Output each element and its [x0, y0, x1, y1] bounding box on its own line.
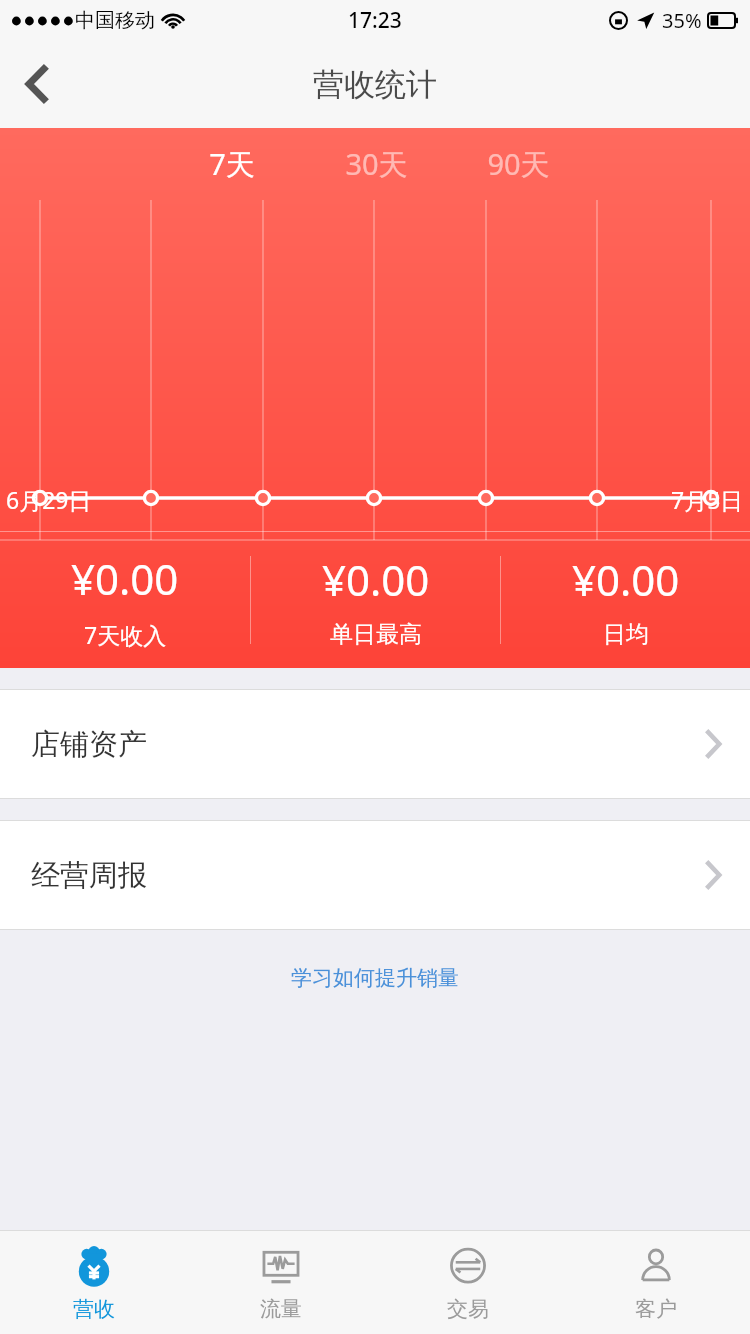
- button[interactable]: 店铺资产: [0, 689, 750, 799]
- staticText: 30天: [345, 144, 408, 184]
- staticText: 中国移动: [75, 8, 155, 33]
- staticText: 营收统计: [313, 65, 437, 104]
- staticText: ¥0.00: [572, 551, 680, 608]
- button[interactable]: ¥0.00: [251, 532, 500, 668]
- staticText: 店铺资产: [31, 726, 147, 763]
- staticText: ¥0.00: [71, 550, 179, 607]
- staticText: 流量: [260, 1296, 302, 1322]
- staticText: ¥0.00: [322, 551, 430, 608]
- staticText: 学习如何提升销量: [291, 965, 459, 991]
- staticText: 单日最高: [330, 620, 422, 649]
- button[interactable]: Back: [0, 40, 76, 128]
- button[interactable]: 7天: [186, 132, 278, 196]
- button[interactable]: 90天: [470, 132, 566, 196]
- button[interactable]: ¥0.00: [501, 532, 750, 668]
- button[interactable]: 经营周报: [0, 820, 750, 930]
- staticText: 营收: [73, 1296, 115, 1322]
- staticText: 6月29日: [6, 484, 92, 515]
- staticText: 7月5日: [671, 484, 744, 515]
- staticText: 17:23: [348, 6, 402, 35]
- button[interactable]: 交易: [374, 1231, 562, 1334]
- staticText: 经营周报: [31, 857, 147, 894]
- staticText: 7天收入: [84, 619, 167, 650]
- staticText: 7天: [209, 144, 255, 184]
- staticText: 日均: [603, 620, 649, 649]
- button[interactable]: ¥0.00: [0, 532, 250, 668]
- button[interactable]: 营收: [0, 1231, 187, 1334]
- staticText: 交易: [447, 1296, 489, 1322]
- staticText: 90天: [487, 144, 550, 184]
- button[interactable]: 客户: [562, 1231, 750, 1334]
- staticText: 35%: [662, 7, 702, 34]
- button[interactable]: 学习如何提升销量: [279, 959, 471, 997]
- button[interactable]: 30天: [328, 132, 424, 196]
- staticText: 客户: [635, 1296, 677, 1322]
- button[interactable]: 流量: [187, 1231, 374, 1334]
